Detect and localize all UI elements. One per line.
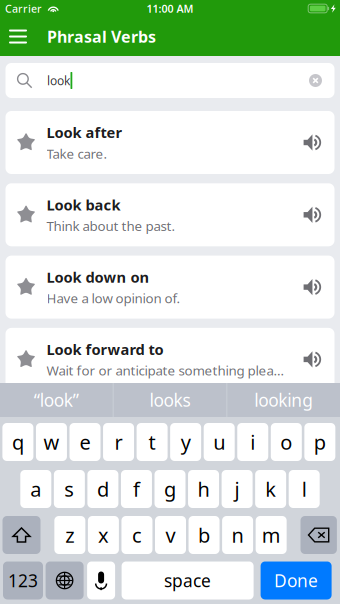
- button[interactable]: looking: [227, 383, 340, 417]
- staticText: n: [232, 522, 244, 548]
- staticText: Look down on: [47, 267, 150, 287]
- button[interactable]: i: [237, 423, 268, 461]
- staticText: g: [164, 476, 176, 502]
- button[interactable]: Delete: [300, 516, 337, 554]
- button[interactable]: Look after: [5, 111, 334, 174]
- staticText: Phrasal Verbs: [47, 26, 156, 47]
- staticText: looking: [254, 388, 313, 411]
- button[interactable]: “look”: [0, 383, 113, 417]
- button[interactable]: w: [36, 423, 67, 461]
- button[interactable]: j: [222, 470, 253, 508]
- staticText: y: [181, 429, 191, 455]
- button[interactable]: looks: [114, 383, 226, 417]
- button[interactable]: e: [69, 423, 100, 461]
- button[interactable]: x: [88, 516, 119, 554]
- button[interactable]: Done: [261, 561, 332, 599]
- staticText: Take care.: [47, 145, 108, 162]
- staticText: Have a low opinion of.: [47, 289, 181, 307]
- staticText: x: [98, 522, 109, 548]
- staticText: Look back: [47, 195, 121, 214]
- button[interactable]: Search: [5, 63, 334, 102]
- staticText: p: [314, 429, 326, 455]
- button[interactable]: z: [54, 516, 85, 554]
- button[interactable]: v: [155, 516, 186, 554]
- staticText: h: [198, 476, 210, 502]
- button[interactable]: a: [20, 470, 51, 508]
- staticText: b: [198, 522, 210, 548]
- staticText: i: [250, 429, 255, 455]
- staticText: d: [97, 476, 109, 502]
- staticText: Carrier: [5, 1, 42, 16]
- staticText: Look forward to: [47, 340, 164, 359]
- staticText: c: [132, 522, 142, 548]
- staticText: “look”: [34, 388, 79, 411]
- staticText: k: [265, 476, 276, 502]
- button[interactable]: p: [304, 423, 335, 461]
- staticText: z: [65, 522, 74, 548]
- button[interactable]: 123: [3, 561, 43, 599]
- staticText: m: [262, 522, 281, 548]
- button[interactable]: q: [2, 423, 33, 461]
- staticText: space: [164, 569, 211, 592]
- staticText: 11:00 AM: [146, 1, 193, 16]
- button[interactable]: r: [103, 423, 134, 461]
- staticText: look: [47, 72, 70, 88]
- button[interactable]: Shift: [2, 516, 40, 554]
- staticText: l: [302, 476, 307, 502]
- button[interactable]: d: [87, 470, 118, 508]
- staticText: Wait for or anticipate something pleas…: [47, 361, 287, 379]
- staticText: q: [12, 429, 24, 455]
- staticText: v: [165, 522, 175, 548]
- button[interactable]: n: [222, 516, 253, 554]
- button[interactable]: u: [204, 423, 235, 461]
- button[interactable]: Look down on: [5, 256, 334, 319]
- staticText: Done: [274, 569, 318, 592]
- staticText: Think about the past.: [47, 217, 176, 235]
- button[interactable]: k: [255, 470, 286, 508]
- staticText: e: [79, 429, 90, 455]
- button[interactable]: l: [289, 470, 320, 508]
- button[interactable]: s: [54, 470, 85, 508]
- staticText: w: [43, 429, 59, 455]
- button[interactable]: b: [188, 516, 219, 554]
- staticText: 123: [8, 569, 38, 592]
- button[interactable]: m: [256, 516, 287, 554]
- button[interactable]: Look forward to: [5, 328, 334, 391]
- button[interactable]: c: [121, 516, 152, 554]
- staticText: Look after: [47, 123, 123, 142]
- button[interactable]: g: [154, 470, 185, 508]
- button[interactable]: Menu: [2, 17, 34, 56]
- button[interactable]: y: [170, 423, 201, 461]
- staticText: a: [30, 476, 41, 502]
- button[interactable]: h: [188, 470, 219, 508]
- button[interactable]: f: [121, 470, 152, 508]
- button[interactable]: Look back: [5, 183, 334, 246]
- staticText: s: [64, 476, 74, 502]
- staticText: j: [235, 476, 240, 502]
- staticText: f: [133, 476, 140, 502]
- button[interactable]: space: [122, 561, 254, 599]
- staticText: looks: [149, 388, 190, 411]
- button[interactable]: Next keyboard: [46, 561, 84, 599]
- staticText: r: [114, 429, 122, 455]
- staticText: t: [149, 429, 156, 455]
- button[interactable]: t: [137, 423, 168, 461]
- button[interactable]: Dictate: [87, 561, 115, 599]
- staticText: u: [213, 429, 225, 455]
- button[interactable]: o: [271, 423, 302, 461]
- staticText: o: [280, 429, 292, 455]
